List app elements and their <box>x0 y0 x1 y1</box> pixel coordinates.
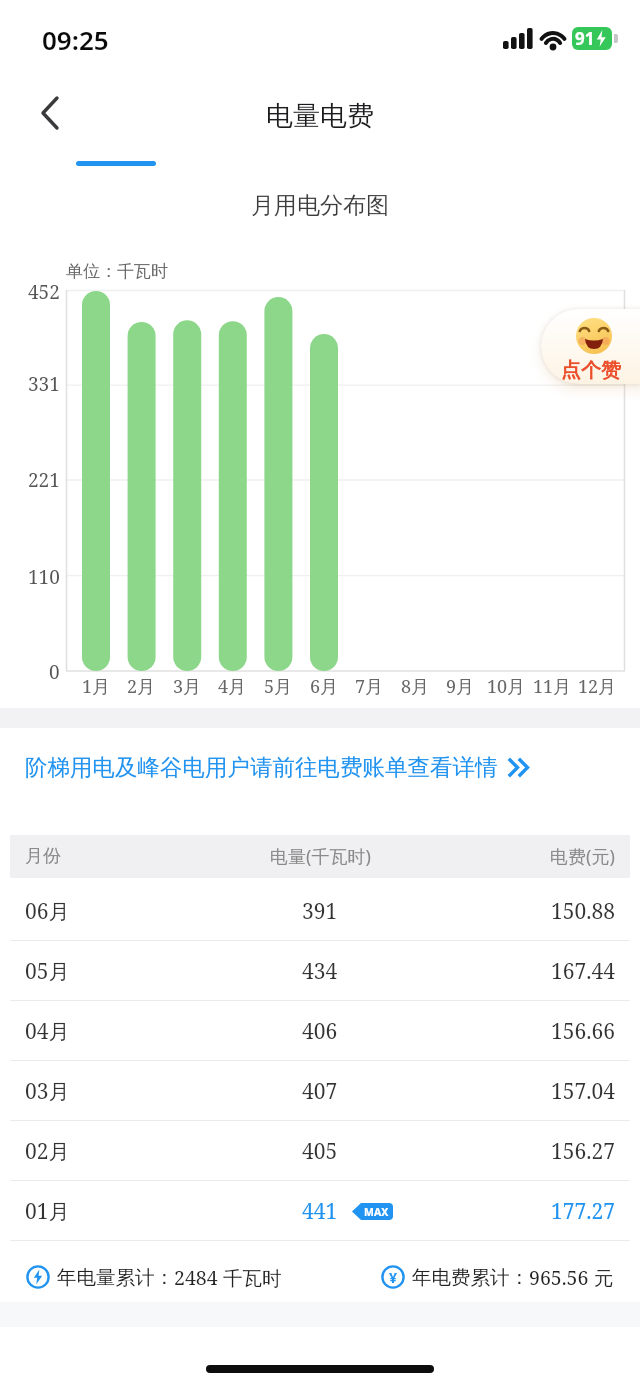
staticText: 05月 <box>25 957 70 986</box>
staticText: 110 <box>28 564 60 588</box>
staticText: 7月 <box>355 674 384 698</box>
staticText: 156.27 <box>551 1137 615 1166</box>
staticText: ¥ <box>389 1268 398 1287</box>
staticText: 177.27 <box>551 1197 615 1226</box>
staticText: 441 <box>302 1197 338 1226</box>
staticText: 10月 <box>487 674 526 698</box>
staticText: 年电量累计： <box>57 1265 174 1290</box>
staticText: 4月 <box>218 674 247 698</box>
button[interactable] <box>10 941 630 1001</box>
staticText: 01月 <box>25 1197 70 1226</box>
staticText: 月份 <box>25 845 61 868</box>
staticText: 阶梯用电及峰谷电用户请前往电费账单查看详情 <box>25 753 498 781</box>
button[interactable]: 年电费累计： <box>412 1264 614 1290</box>
staticText: 150.88 <box>551 897 615 926</box>
staticText: 电量电费 <box>266 99 374 133</box>
staticText: 405 <box>302 1137 338 1166</box>
staticText: 91 <box>575 27 595 50</box>
staticText: 单位：千瓦时 <box>66 261 168 282</box>
staticText: 千瓦时 <box>218 1264 282 1290</box>
staticText: 09:25 <box>42 22 109 54</box>
button[interactable]: 阶梯用电及峰谷电用户请前往电费账单查看详情 <box>0 748 640 786</box>
staticText: MAX <box>364 1205 389 1219</box>
button[interactable] <box>10 881 630 941</box>
staticText: 电费(元) <box>550 844 615 869</box>
button[interactable] <box>10 1061 630 1121</box>
staticText: 04月 <box>25 1017 70 1046</box>
staticText: 月用电分布图 <box>251 191 389 220</box>
button[interactable] <box>10 1001 630 1061</box>
staticText: 331 <box>28 371 60 395</box>
button[interactable] <box>24 88 76 140</box>
staticText: 434 <box>302 957 338 986</box>
staticText: 5月 <box>264 674 293 698</box>
staticText: 12月 <box>578 674 617 698</box>
staticText: 2月 <box>127 674 156 698</box>
staticText: 6月 <box>310 674 339 698</box>
staticText: 407 <box>302 1077 338 1106</box>
staticText: 元 <box>589 1264 614 1290</box>
staticText: 167.44 <box>551 957 615 986</box>
staticText: 02月 <box>25 1137 70 1166</box>
staticText: 9月 <box>446 674 475 698</box>
button[interactable] <box>10 1181 630 1241</box>
staticText: 11月 <box>533 674 572 698</box>
staticText: 2484 <box>174 1264 218 1290</box>
staticText: 452 <box>28 279 60 303</box>
button[interactable]: 年电量累计： <box>57 1264 282 1290</box>
button[interactable]: 点个赞 <box>541 309 640 384</box>
staticText: 年电费累计： <box>412 1265 529 1290</box>
button[interactable] <box>10 1121 630 1181</box>
staticText: 点个赞 <box>561 358 621 382</box>
staticText: 06月 <box>25 897 70 926</box>
staticText: 3月 <box>173 674 202 698</box>
button[interactable] <box>76 161 156 166</box>
staticText: 8月 <box>401 674 430 698</box>
staticText: 391 <box>302 897 338 926</box>
staticText: 157.04 <box>551 1077 615 1106</box>
staticText: 406 <box>302 1017 338 1046</box>
staticText: 电量(千瓦时) <box>270 844 371 869</box>
staticText: 221 <box>28 467 60 491</box>
staticText: 156.66 <box>551 1017 615 1046</box>
staticText: 0 <box>49 659 60 683</box>
staticText: 965.56 <box>529 1264 589 1290</box>
staticText: 03月 <box>25 1077 70 1106</box>
staticText: 1月 <box>82 674 111 698</box>
